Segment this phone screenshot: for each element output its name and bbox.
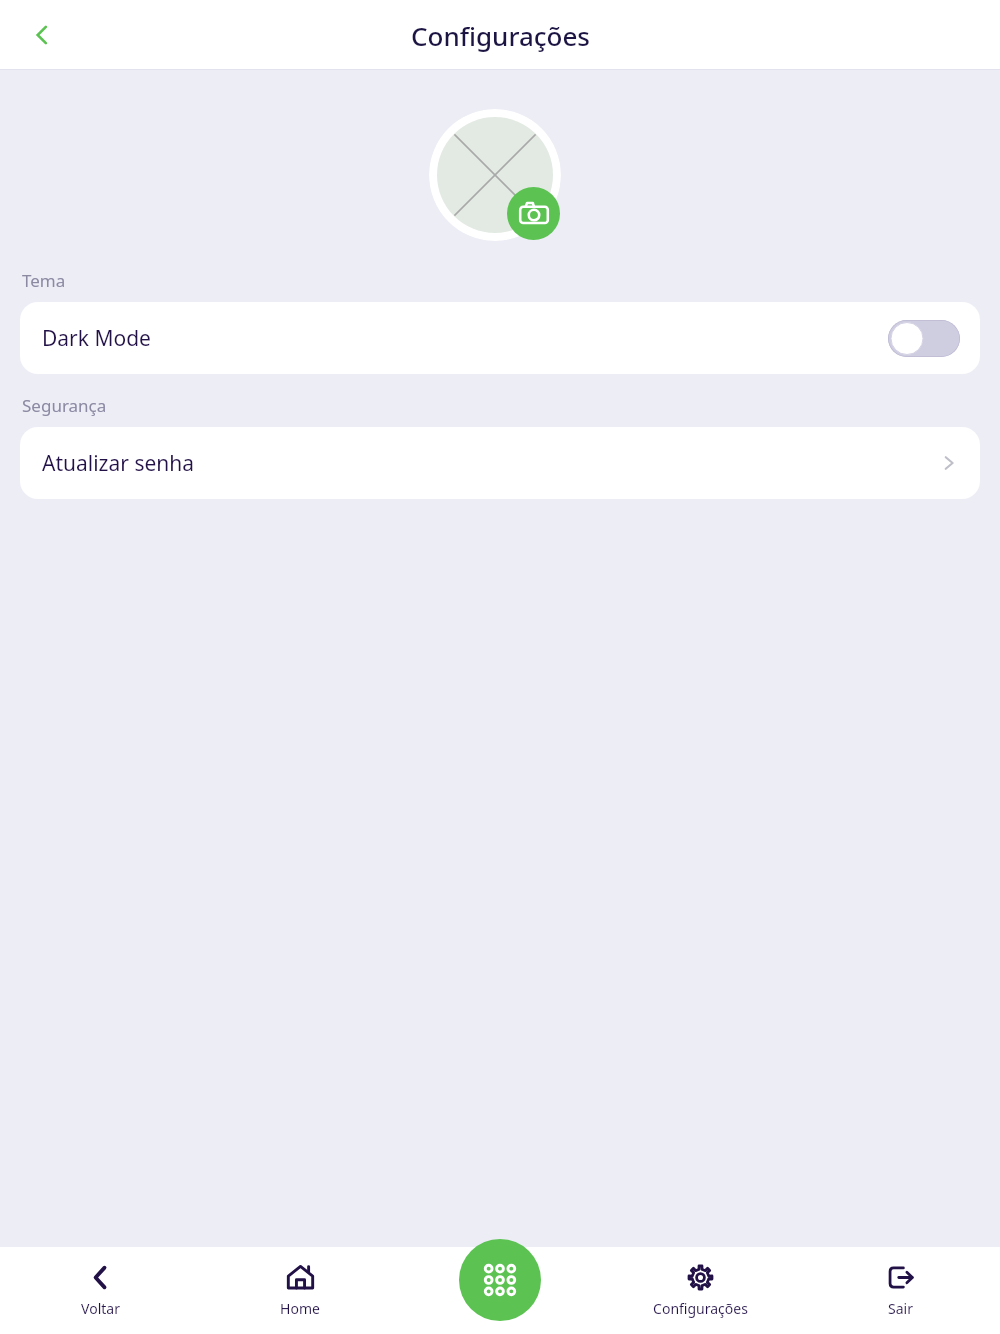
button[interactable]: Atualizar senha [20, 427, 980, 499]
staticText: Sair [888, 1299, 913, 1318]
button[interactable]: Home [200, 1247, 400, 1334]
button[interactable]: Dark Mode toggle [888, 320, 960, 357]
staticText: Configurações [653, 1299, 748, 1318]
button[interactable]: Alterar foto [507, 187, 560, 240]
staticText: Dark Mode [42, 324, 151, 353]
staticText: Home [280, 1299, 320, 1318]
staticText: Atualizar senha [42, 449, 195, 478]
button[interactable]: Menu de aplicativos [459, 1239, 541, 1321]
button[interactable]: Voltar [0, 1247, 200, 1334]
staticText: Segurança [22, 394, 107, 417]
button[interactable]: Configurações [600, 1247, 800, 1334]
button[interactable]: Voltar [14, 7, 70, 63]
button[interactable]: Foto de perfil [429, 109, 561, 241]
button[interactable]: Sair [800, 1247, 1000, 1334]
staticText: Tema [22, 269, 66, 292]
staticText: Configurações [411, 18, 590, 53]
button[interactable]: Dark Mode [20, 302, 980, 374]
staticText: Voltar [81, 1299, 120, 1318]
